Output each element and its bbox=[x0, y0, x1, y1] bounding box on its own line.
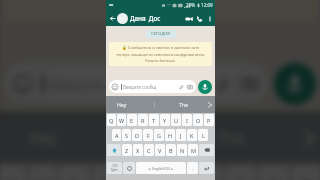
button[interactable]: M bbox=[188, 144, 198, 156]
button[interactable]: Hey bbox=[106, 96, 154, 113]
button[interactable]: Введите сообщ bbox=[109, 80, 196, 93]
button[interactable]: 🔒 Сообщения и звонки в данном чате тепер… bbox=[111, 45, 210, 63]
staticText: 🔒 Сообщения и звонки в данном чате тепер… bbox=[11, 0, 310, 11]
button[interactable]: I bbox=[182, 114, 192, 126]
button[interactable]: U bbox=[192, 165, 222, 180]
button[interactable]: Record voice message bbox=[274, 63, 316, 105]
staticText: N bbox=[180, 147, 185, 154]
button[interactable]: X bbox=[133, 144, 143, 156]
button[interactable]: More suggestions bbox=[204, 96, 215, 113]
staticText: K bbox=[190, 132, 194, 139]
button[interactable]: H bbox=[165, 129, 175, 141]
staticText: R bbox=[102, 174, 114, 180]
button[interactable]: Record voice message bbox=[198, 80, 212, 94]
button[interactable]: O bbox=[193, 114, 203, 126]
staticText: Hey bbox=[29, 126, 59, 147]
button[interactable]: Call bbox=[194, 13, 205, 24]
staticText: P bbox=[207, 117, 211, 124]
button[interactable]: T bbox=[149, 114, 159, 126]
button[interactable]: 🔒 Сообщения и звонки в данном чате тепер… bbox=[11, 0, 310, 11]
staticText: Sym bbox=[111, 168, 118, 172]
button[interactable]: . bbox=[187, 162, 198, 174]
staticText: ► bbox=[171, 167, 174, 170]
staticText: H bbox=[168, 132, 173, 139]
button[interactable]: E bbox=[127, 114, 137, 126]
button[interactable]: Q bbox=[107, 114, 116, 126]
staticText: СЕГОДНЯ bbox=[151, 31, 171, 37]
staticText: F bbox=[147, 132, 150, 139]
staticText: Z bbox=[125, 147, 129, 154]
button[interactable]: W bbox=[117, 114, 126, 126]
staticText: . bbox=[192, 165, 194, 171]
staticText: Q bbox=[109, 117, 114, 124]
staticText: A bbox=[115, 132, 119, 139]
button[interactable]: T bbox=[126, 165, 156, 180]
staticText: J bbox=[180, 132, 182, 139]
staticText: ◄ bbox=[148, 167, 151, 170]
button[interactable]: The bbox=[144, 111, 292, 162]
staticText: R bbox=[141, 117, 145, 124]
button[interactable]: The bbox=[155, 96, 204, 113]
button[interactable]: V bbox=[155, 144, 165, 156]
staticText: Введите сообщ bbox=[47, 75, 150, 93]
staticText: English(US) bbox=[152, 166, 170, 171]
staticText: U bbox=[201, 174, 216, 180]
button[interactable]: Video call bbox=[183, 13, 194, 24]
button[interactable]: Shift bbox=[107, 144, 121, 156]
staticText: L bbox=[202, 132, 205, 139]
button[interactable]: G bbox=[154, 129, 164, 141]
button[interactable]: Back bbox=[108, 14, 116, 22]
button[interactable]: D bbox=[132, 129, 142, 141]
button[interactable]: N bbox=[177, 144, 187, 156]
staticText: U bbox=[174, 117, 179, 124]
button[interactable]: Y bbox=[160, 114, 170, 126]
button[interactable]: J bbox=[176, 129, 186, 141]
button[interactable]: F bbox=[143, 129, 153, 141]
button[interactable]: Camera bbox=[186, 83, 194, 91]
button[interactable]: 123 bbox=[107, 162, 122, 174]
staticText: 20% bbox=[186, 2, 196, 8]
staticText: C bbox=[147, 147, 151, 154]
button[interactable]: Y bbox=[159, 165, 189, 180]
button[interactable]: B bbox=[166, 144, 176, 156]
staticText: Даня Дос bbox=[130, 14, 161, 22]
button[interactable]: Z bbox=[122, 144, 132, 156]
button[interactable]: More options bbox=[205, 14, 214, 23]
button[interactable]: A bbox=[112, 129, 121, 141]
button[interactable]: U bbox=[171, 114, 181, 126]
button[interactable]: Введите сообщ bbox=[5, 63, 268, 102]
button[interactable]: L bbox=[198, 129, 208, 141]
staticText: E bbox=[130, 117, 134, 124]
button[interactable]: Camera bbox=[237, 72, 262, 96]
button[interactable]: S bbox=[122, 129, 131, 141]
button[interactable]: Attach bbox=[210, 72, 234, 96]
button[interactable]: R bbox=[138, 114, 148, 126]
button[interactable]: P bbox=[204, 114, 214, 126]
button[interactable]: Contact photo bbox=[117, 13, 128, 24]
button[interactable]: Attach bbox=[177, 83, 185, 91]
button[interactable]: C bbox=[144, 144, 154, 156]
button[interactable]: K bbox=[187, 129, 197, 141]
button[interactable]: Emoji bbox=[123, 162, 135, 174]
button[interactable]: R bbox=[93, 165, 123, 180]
staticText: The bbox=[179, 101, 189, 108]
staticText: T bbox=[152, 117, 156, 124]
button[interactable]: Space bbox=[136, 162, 186, 174]
button[interactable]: Enter bbox=[199, 162, 214, 174]
button[interactable]: Backspace bbox=[199, 144, 214, 156]
button[interactable]: Hey bbox=[0, 111, 141, 162]
